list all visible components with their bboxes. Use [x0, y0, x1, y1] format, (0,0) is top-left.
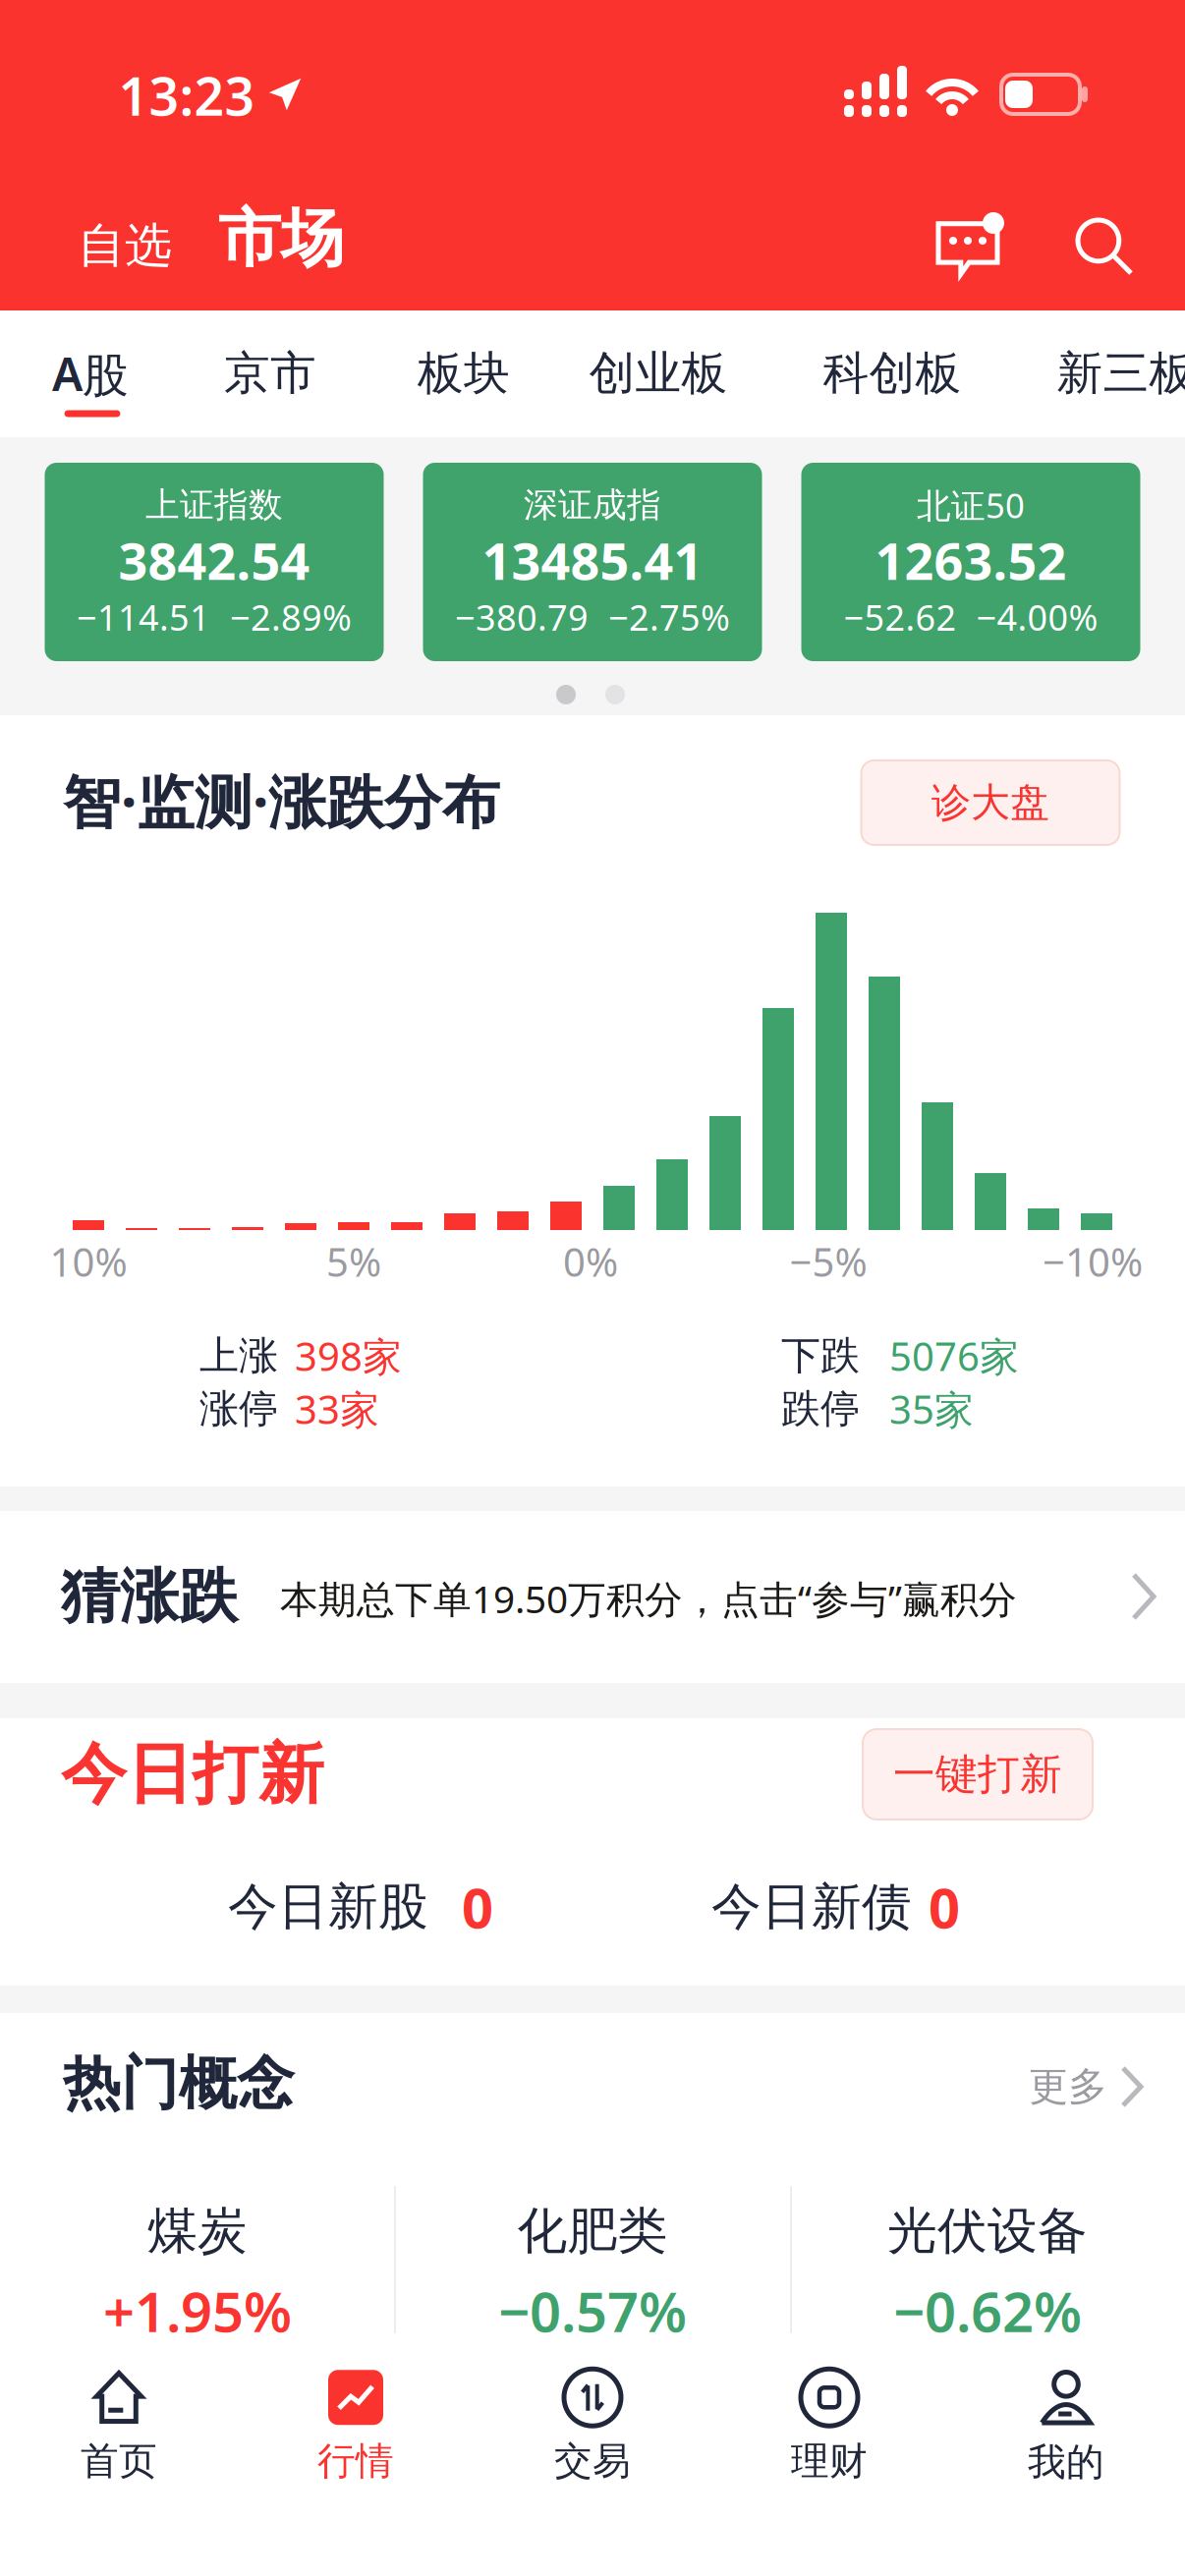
staticText: −2.89% — [230, 594, 352, 640]
button[interactable]: 新三板 — [1057, 345, 1185, 401]
staticText: −52.62 — [844, 594, 957, 640]
staticText: 今日打新 — [61, 1734, 324, 1815]
button[interactable]: 上证指数 — [45, 463, 384, 661]
staticText: 5% — [326, 1235, 381, 1288]
staticText: 煤炭 — [147, 2201, 248, 2262]
staticText: 0% — [563, 1235, 618, 1288]
button[interactable]: Messages — [936, 218, 1005, 279]
button[interactable]: 首页 — [0, 2364, 237, 2492]
button[interactable]: 市场 — [218, 196, 454, 282]
staticText: −5% — [790, 1235, 867, 1288]
staticText: −4.00% — [976, 594, 1098, 640]
staticText: 13485.41 — [482, 526, 703, 594]
button[interactable]: 京市 — [224, 345, 316, 401]
staticText: 市场 — [218, 200, 344, 277]
button[interactable]: Search — [1076, 218, 1133, 275]
button[interactable]: 自选 — [78, 211, 215, 280]
button[interactable]: 猜涨跌 — [0, 1511, 1185, 1683]
staticText: 智·监测·涨跌分布 — [63, 762, 500, 839]
button[interactable]: 理财 — [711, 2364, 948, 2492]
button[interactable]: 煤炭 +1.95% — [11, 2182, 384, 2359]
staticText: 科创板 — [823, 345, 961, 401]
button[interactable]: 深证成指 — [423, 463, 762, 661]
staticText: 10% — [50, 1235, 127, 1288]
button[interactable]: 诊大盘 — [861, 760, 1120, 845]
staticText: 398家 — [295, 1330, 402, 1382]
staticText: 今日新债 — [711, 1876, 912, 1938]
staticText: 诊大盘 — [931, 778, 1049, 827]
staticText: 0 — [929, 1870, 960, 1943]
staticText: 热门概念 — [63, 2048, 295, 2119]
staticText: 上证指数 — [145, 484, 283, 526]
staticText: 本期总下单19.50万积分，点击“参与”赢积分 — [280, 1573, 1017, 1624]
staticText: 35家 — [889, 1383, 974, 1435]
staticText: 涨停 — [199, 1385, 278, 1433]
staticText: 创业板 — [589, 345, 728, 401]
staticText: 一键打新 — [893, 1749, 1062, 1800]
staticText: 33家 — [295, 1383, 379, 1435]
staticText: −0.57% — [498, 2274, 687, 2347]
button[interactable]: 行情 — [237, 2364, 474, 2492]
button[interactable]: 北证50 — [801, 463, 1140, 661]
staticText: 深证成指 — [524, 484, 661, 526]
staticText: +1.95% — [103, 2274, 292, 2347]
button[interactable]: 科创板 — [823, 345, 961, 401]
button[interactable]: 创业板 — [589, 345, 728, 401]
staticText: 理财 — [791, 2438, 868, 2484]
staticText: 今日新股 — [228, 1876, 428, 1938]
staticText: 跌停 — [781, 1385, 860, 1433]
staticText: 京市 — [224, 345, 316, 401]
staticText: 13:23 — [118, 61, 255, 130]
staticText: −114.51 — [77, 594, 210, 640]
staticText: 自选 — [78, 217, 172, 275]
button[interactable]: 交易 — [474, 2364, 711, 2492]
staticText: 板块 — [418, 345, 510, 401]
staticText: 0 — [462, 1870, 493, 1943]
button[interactable]: 我的 — [948, 2364, 1185, 2492]
staticText: 光伏设备 — [887, 2201, 1088, 2262]
staticText: 上涨 — [199, 1332, 278, 1380]
staticText: 1263.52 — [875, 526, 1067, 594]
staticText: 北证50 — [917, 482, 1025, 528]
staticText: A股 — [52, 343, 129, 404]
staticText: 5076家 — [889, 1330, 1019, 1382]
staticText: 猜涨跌 — [61, 1560, 238, 1633]
staticText: 我的 — [1028, 2439, 1104, 2485]
staticText: −2.75% — [608, 594, 730, 640]
button[interactable]: 板块 — [418, 345, 510, 401]
staticText: 新三板 — [1057, 345, 1185, 401]
staticText: 首页 — [81, 2438, 157, 2484]
button[interactable]: 化肥类 −0.57% — [406, 2182, 779, 2359]
staticText: 行情 — [317, 2438, 394, 2484]
staticText: 下跌 — [781, 1332, 860, 1380]
staticText: −10% — [1043, 1235, 1143, 1288]
staticText: −380.79 — [455, 594, 589, 640]
button[interactable]: A股 — [52, 343, 129, 404]
button[interactable]: 更多 — [1029, 2063, 1141, 2111]
staticText: 更多 — [1029, 2063, 1107, 2111]
staticText: −0.62% — [893, 2274, 1082, 2347]
staticText: 3842.54 — [118, 526, 310, 594]
button[interactable]: 一键打新 — [863, 1729, 1093, 1820]
button[interactable]: 光伏设备 −0.62% — [801, 2182, 1174, 2359]
staticText: 交易 — [554, 2438, 631, 2484]
staticText: 化肥类 — [517, 2201, 668, 2262]
